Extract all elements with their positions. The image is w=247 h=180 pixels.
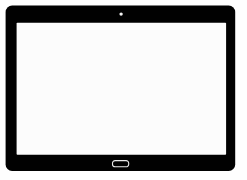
button[interactable]: Tablet display [17,23,227,155]
button[interactable]: Home [111,159,131,169]
